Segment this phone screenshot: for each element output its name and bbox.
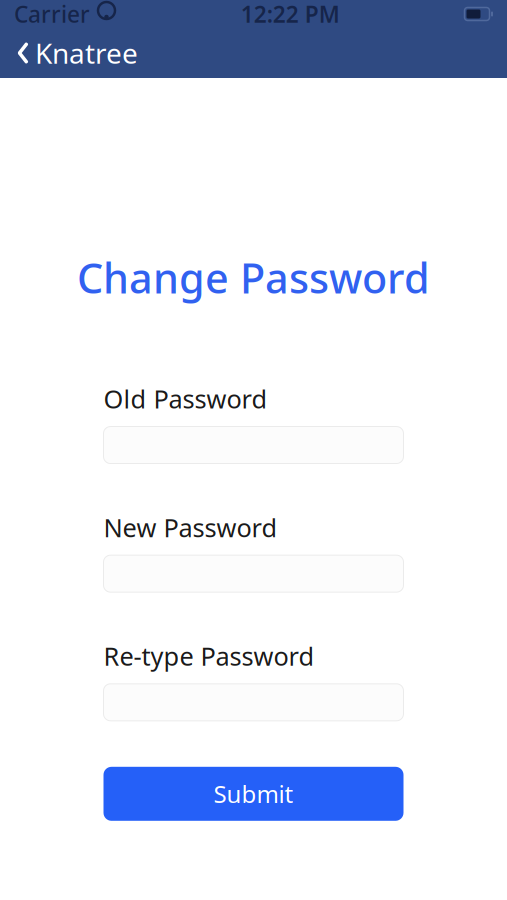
staticText: Submit — [213, 778, 293, 810]
staticText: 12:22 PM — [241, 0, 340, 29]
button[interactable]: Knatree — [0, 24, 150, 82]
staticText: Old Password — [103, 382, 267, 415]
staticText: Change Password — [77, 250, 430, 305]
staticText: Carrier — [14, 0, 90, 29]
staticText: Knatree — [35, 34, 138, 72]
staticText: Re-type Password — [103, 639, 314, 673]
staticText: New Password — [103, 510, 277, 544]
button[interactable]: Submit — [103, 767, 403, 821]
